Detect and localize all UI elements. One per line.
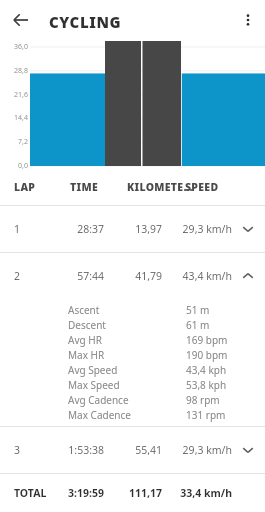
staticText: 98 rpm: [186, 393, 220, 407]
staticText: 3: [14, 443, 21, 457]
button[interactable]: 2: [0, 253, 265, 299]
staticText: 111,17: [82, 486, 162, 500]
staticText: 43,4 km/h: [152, 269, 232, 283]
staticText: 0,0: [2, 161, 28, 171]
staticText: 21,6: [2, 90, 28, 100]
staticText: Max HR: [68, 348, 105, 362]
staticText: TIME: [70, 180, 98, 194]
staticText: 36,0: [2, 42, 28, 52]
button[interactable]: Back: [7, 6, 35, 34]
staticText: 7,2: [2, 137, 28, 147]
staticText: 57:44: [24, 269, 104, 283]
staticText: Avg Cadence: [68, 393, 129, 407]
staticText: 28,8: [2, 66, 28, 76]
staticText: 28:37: [24, 222, 104, 236]
staticText: 53,8 kph: [186, 378, 227, 392]
staticText: 41,79: [82, 269, 162, 283]
staticText: KILOMETE…: [127, 180, 193, 194]
staticText: Descent: [68, 318, 106, 332]
staticText: 43,4 kph: [186, 363, 227, 377]
staticText: 13,97: [82, 222, 162, 236]
staticText: 33,4 km/h: [152, 486, 232, 500]
staticText: CYCLING: [49, 12, 122, 32]
button[interactable]: More options: [234, 6, 262, 34]
staticText: LAP: [14, 180, 36, 194]
staticText: 29,3 km/h: [152, 222, 232, 236]
staticText: 14,4: [2, 113, 28, 123]
staticText: 55,41: [82, 443, 162, 457]
staticText: 61 m: [186, 318, 210, 332]
button[interactable]: 3: [0, 427, 265, 473]
staticText: 190 bpm: [186, 348, 228, 362]
button[interactable]: 1: [0, 206, 265, 252]
staticText: Avg Speed: [68, 363, 118, 377]
staticText: 3:19:59: [24, 486, 104, 500]
staticText: 169 bpm: [186, 333, 228, 347]
staticText: Max Speed: [68, 378, 120, 392]
staticText: 1:53:38: [24, 443, 104, 457]
staticText: Max Cadence: [68, 408, 131, 422]
staticText: Avg HR: [68, 333, 102, 347]
staticText: TOTAL: [14, 486, 47, 500]
staticText: 2: [14, 269, 21, 283]
staticText: Ascent: [68, 303, 100, 317]
staticText: 131 rpm: [186, 408, 226, 422]
staticText: SPEED: [185, 180, 219, 194]
staticText: 51 m: [186, 303, 210, 317]
staticText: 1: [14, 222, 21, 236]
staticText: 29,3 km/h: [152, 443, 232, 457]
